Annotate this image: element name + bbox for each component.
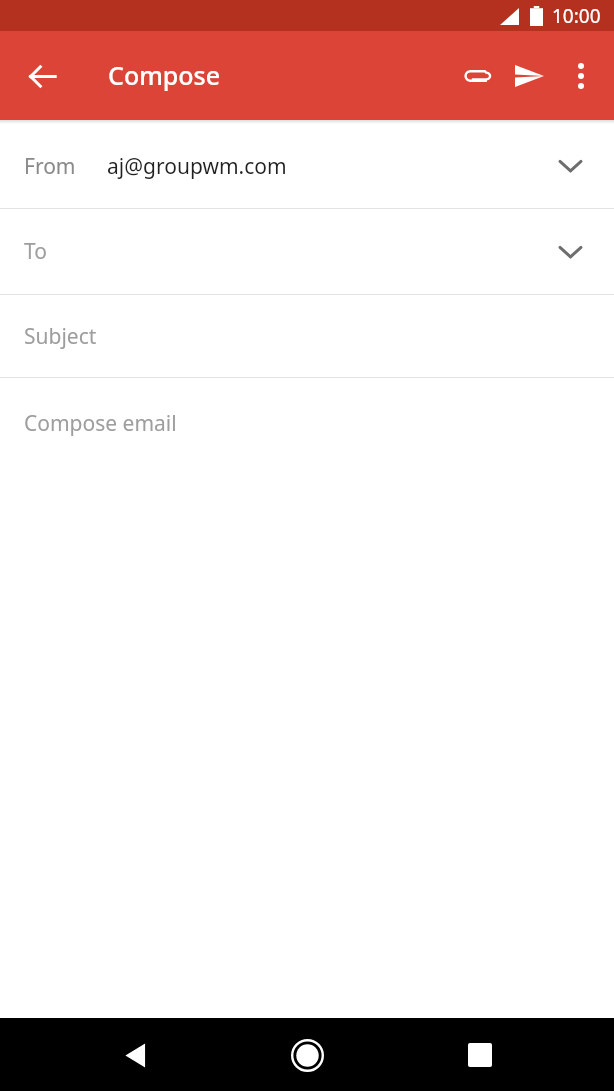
staticText: Subject (24, 322, 97, 351)
staticText: Compose (108, 58, 221, 92)
button[interactable]: Home (279, 1027, 335, 1083)
staticText: Compose email (24, 409, 177, 438)
button[interactable]: More options (555, 50, 607, 102)
button[interactable]: Recent apps (452, 1027, 508, 1083)
button[interactable]: From (0, 124, 614, 208)
button[interactable]: Subject (0, 295, 614, 377)
button[interactable]: Compose email (0, 378, 614, 1018)
button[interactable]: To (0, 209, 614, 294)
button[interactable]: Attach file (451, 50, 503, 102)
staticText: To (24, 237, 47, 266)
button[interactable]: Show Cc and Bcc (546, 228, 594, 276)
button[interactable]: Navigate up (14, 48, 70, 104)
button[interactable]: Expand from address (546, 142, 594, 190)
button[interactable]: Back (107, 1027, 163, 1083)
staticText: From (24, 152, 76, 181)
staticText: 10:00 (552, 3, 601, 29)
button[interactable]: Send (503, 50, 555, 102)
staticText: aj@groupwm.com (107, 152, 287, 181)
